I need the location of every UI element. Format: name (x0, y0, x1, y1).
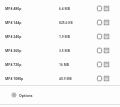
button[interactable]: MP4 720p (0, 57, 120, 71)
button[interactable]: Details (103, 61, 110, 68)
button[interactable]: Details (103, 19, 110, 26)
button[interactable]: Download (96, 47, 103, 54)
button[interactable]: Download (96, 75, 103, 82)
staticText: MP4 1080p (5, 76, 24, 81)
button[interactable]: MP4 1080p (0, 71, 120, 85)
button[interactable]: Details (103, 33, 110, 40)
staticText: MP4 360p (5, 48, 22, 53)
button[interactable]: MP4 360p (0, 43, 120, 57)
button[interactable]: MP4 240p (0, 29, 120, 43)
staticText: 825.6 KB (59, 20, 73, 24)
button[interactable]: Download (96, 19, 103, 26)
staticText: 3.5 MB (59, 48, 70, 52)
staticText: MP4 480p (5, 6, 22, 11)
staticText: MP4 720p (5, 62, 22, 67)
button[interactable]: MP4 480p (0, 1, 120, 15)
staticText: 40.9 MB (59, 76, 72, 80)
button[interactable]: Details (103, 75, 110, 82)
button[interactable]: Details (103, 47, 110, 54)
staticText: 1.9 MB (59, 34, 70, 38)
staticText: 16 MB (59, 62, 69, 66)
button[interactable]: Download (96, 33, 103, 40)
button[interactable]: Download (96, 5, 103, 12)
button[interactable]: Details (103, 5, 110, 12)
staticText: MP4 240p (5, 34, 22, 39)
button[interactable]: Options (0, 86, 120, 104)
staticText: 6.4 MB (59, 6, 70, 10)
staticText: MP4 144p (5, 20, 22, 25)
button[interactable]: Download (96, 61, 103, 68)
staticText: Options (19, 93, 33, 98)
button[interactable]: MP4 144p (0, 15, 120, 29)
